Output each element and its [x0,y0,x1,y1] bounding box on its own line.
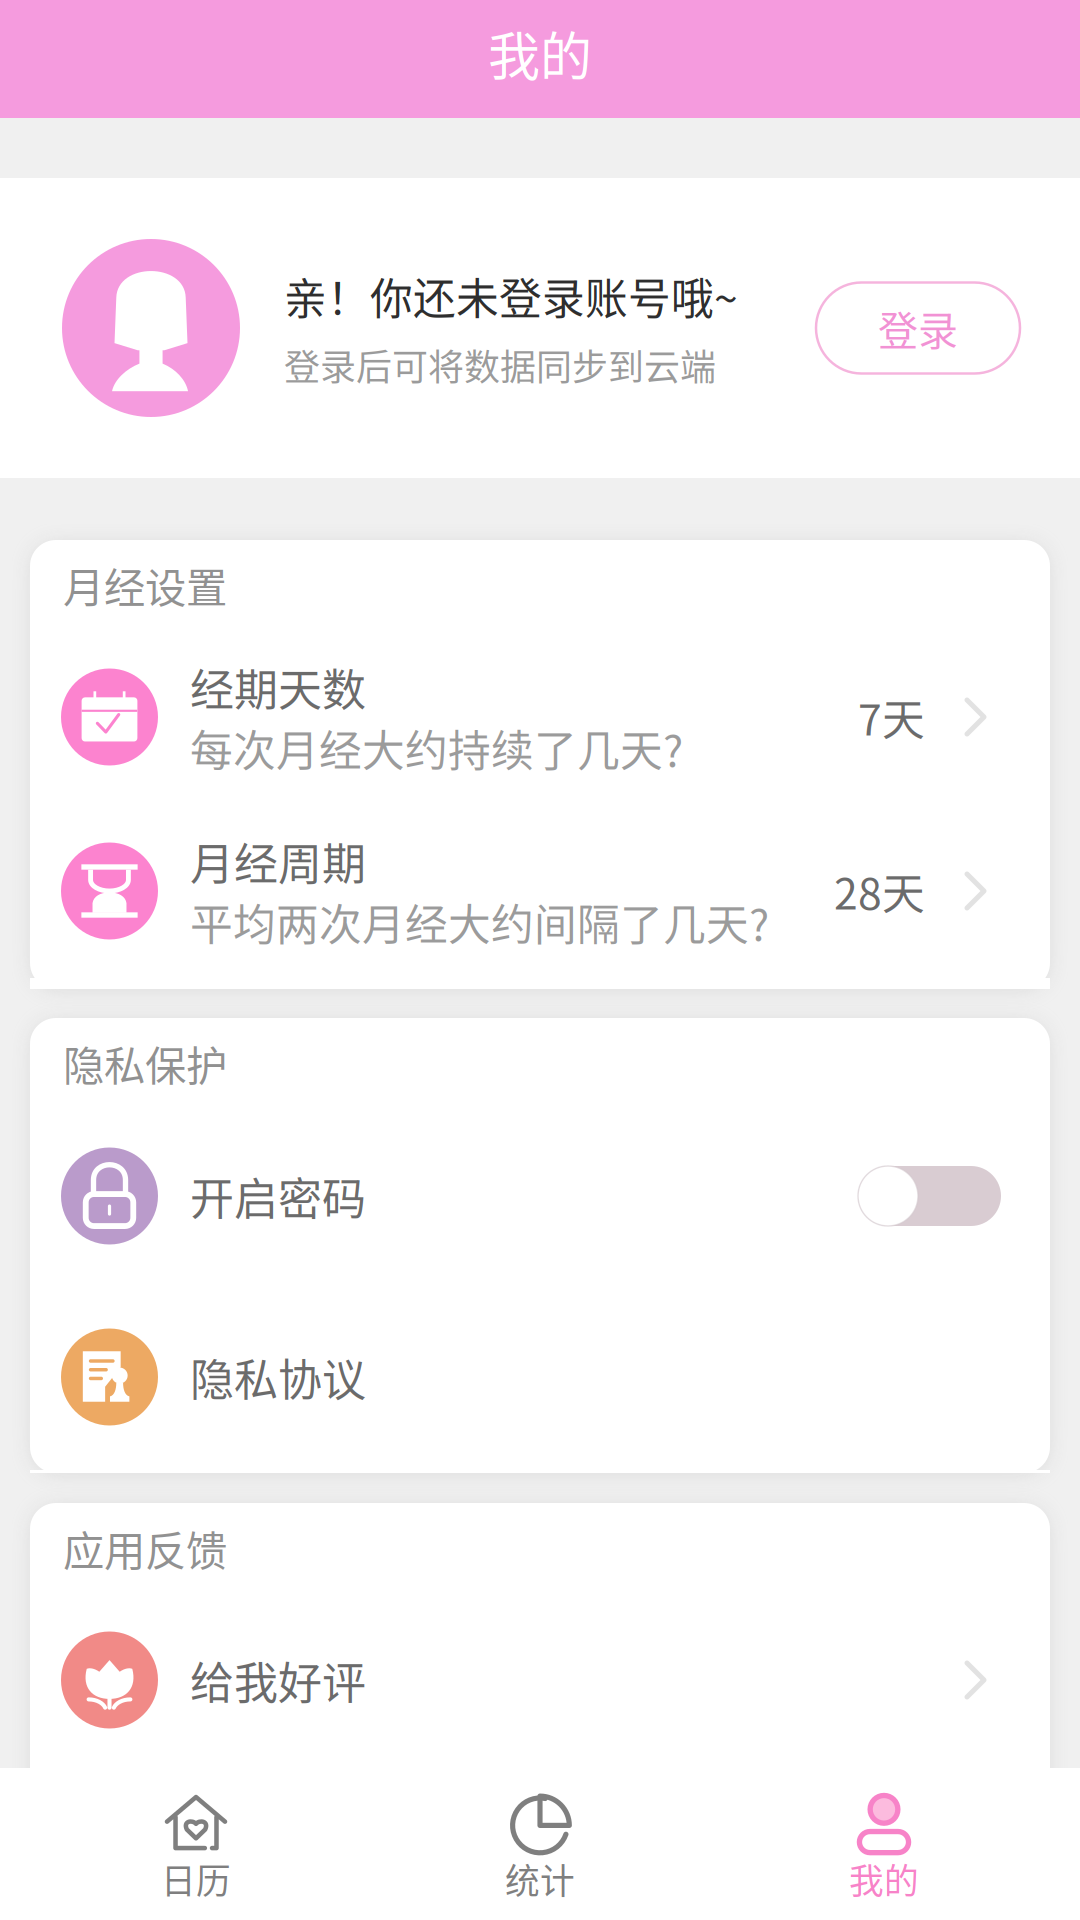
button[interactable]: 统计 [368,1768,712,1920]
button[interactable]: 给我好评 [30,1593,1050,1767]
button[interactable]: 我的 [712,1768,1056,1920]
staticText: 我的 [849,1854,919,1904]
button[interactable]: 月经周期 [30,804,1050,978]
staticText: 日历 [161,1854,231,1904]
staticText: 统计 [505,1854,575,1904]
button[interactable]: 登录 [816,282,1020,373]
button[interactable]: 隐私协议 [30,1284,1050,1470]
staticText: 28天 [834,860,925,922]
staticText: 亲！你还未登录账号哦~ [284,265,738,327]
button[interactable]: 开启密码 [858,1166,1001,1226]
staticText: 每次月经大约持续了几天? [190,717,683,779]
staticText: 隐私协议 [190,1345,366,1409]
staticText: 我的 [488,15,592,91]
staticText: 7天 [858,686,925,748]
staticText: 登录后可将数据同步到云端 [284,339,716,391]
button[interactable]: 经期天数 [30,630,1050,804]
staticText: 给我好评 [190,1648,366,1712]
staticText: 开启密码 [190,1164,366,1228]
button[interactable]: 日历 [24,1768,368,1920]
staticText: 登录 [878,299,958,357]
staticText: 应用反馈 [63,1518,227,1578]
staticText: 经期天数 [190,655,366,719]
staticText: 月经设置 [63,555,227,615]
staticText: 隐私保护 [63,1033,227,1093]
staticText: 月经周期 [190,829,366,893]
staticText: 平均两次月经大约间隔了几天? [190,891,769,953]
